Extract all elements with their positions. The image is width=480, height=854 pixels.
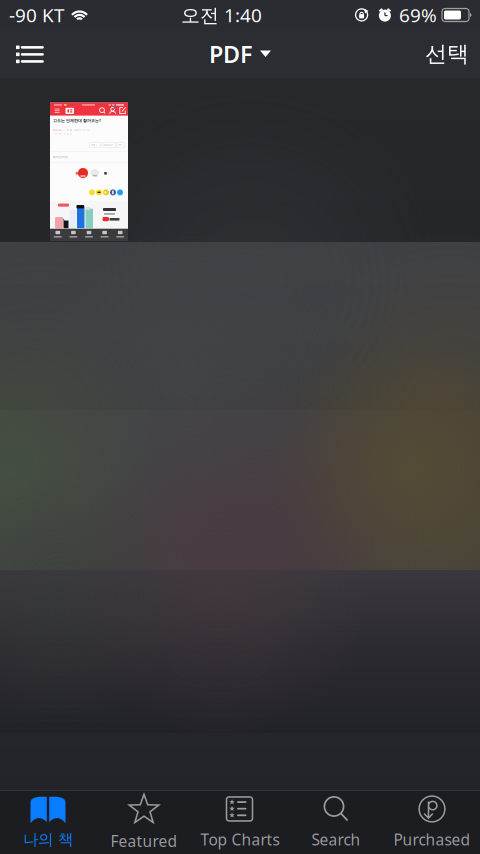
staticText: 나의 책: [23, 830, 73, 849]
staticText: Top Charts: [200, 829, 279, 850]
staticText: 미디어다음: [53, 128, 66, 132]
button[interactable]: Featured: [96, 791, 192, 854]
staticText: 2018.01.15 11:21: [74, 128, 90, 132]
staticText: 기자명: [53, 132, 62, 135]
staticText: PDF: [209, 38, 253, 70]
button[interactable]: 선택: [410, 30, 480, 78]
staticText: Featured: [110, 830, 177, 852]
staticText: 댓글 1: [91, 143, 97, 146]
staticText: 댓글: [66, 128, 72, 131]
button[interactable]: Search: [288, 791, 384, 854]
staticText: -90 KT: [9, 2, 65, 28]
staticText: Search: [311, 829, 360, 850]
button[interactable]: 나의 책: [0, 791, 96, 854]
staticText: 선택: [425, 40, 469, 68]
button[interactable]: PDF document: [50, 101, 128, 241]
button[interactable]: Collections: [0, 30, 58, 78]
staticText: Purchased: [393, 829, 470, 850]
staticText: 조회수: [63, 132, 72, 135]
button[interactable]: PDF: [195, 30, 285, 78]
staticText: 69%: [399, 2, 437, 28]
staticText: 재미있어요: [53, 155, 68, 159]
staticText: 오전 1:40: [181, 2, 262, 28]
staticText: 고오는 언제한대 할까조는?: [53, 118, 101, 123]
staticText: 메일보내기: [103, 143, 113, 146]
button[interactable]: Top Charts: [192, 791, 288, 854]
button[interactable]: Purchased: [384, 791, 480, 854]
